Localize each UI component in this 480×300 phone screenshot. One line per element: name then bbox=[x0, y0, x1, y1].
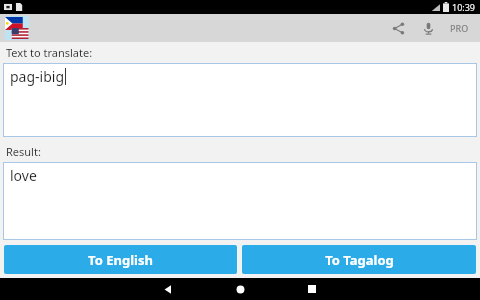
button[interactable]: To Tagalog bbox=[242, 245, 476, 274]
button[interactable]: To English bbox=[4, 245, 237, 274]
staticText: Result: bbox=[6, 144, 41, 159]
button[interactable]: Recent apps bbox=[301, 278, 323, 300]
button[interactable]: Back bbox=[157, 278, 179, 300]
staticText: To Tagalog bbox=[325, 251, 394, 269]
staticText: PRO bbox=[450, 22, 469, 34]
staticText: Text to translate: bbox=[6, 45, 93, 60]
button[interactable]: pag-ibig bbox=[3, 63, 477, 137]
button[interactable]: Home bbox=[229, 278, 251, 300]
button[interactable]: Share bbox=[385, 15, 411, 41]
button[interactable]: PRO bbox=[450, 22, 469, 34]
button[interactable]: Tagalog English translator bbox=[5, 16, 29, 40]
staticText: To English bbox=[88, 251, 153, 269]
button[interactable]: Voice input bbox=[415, 15, 441, 41]
staticText: pag-ibig bbox=[10, 67, 65, 86]
button[interactable]: love bbox=[3, 162, 477, 240]
staticText: love bbox=[10, 166, 37, 185]
staticText: 10:39 bbox=[452, 1, 476, 13]
